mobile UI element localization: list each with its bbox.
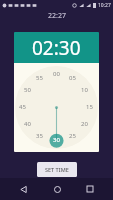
staticText: 05 [69,74,76,82]
staticText: 10:27 [98,2,111,9]
button[interactable]: Recents [79,178,101,200]
staticText: 45 [19,103,26,111]
button[interactable]: Back [12,178,34,200]
staticText: 22:27 [48,11,66,21]
staticText: 50 [24,86,31,94]
staticText: 30 [53,136,60,144]
staticText: 00 [53,70,60,78]
staticText: 55 [36,74,43,82]
button[interactable]: 00 [14,63,99,152]
staticText: 15 [86,103,93,111]
staticText: 10 [81,86,88,94]
staticText: SET TIME [45,166,69,173]
button[interactable]: SET TIME [37,162,77,177]
staticText: 20 [81,120,88,128]
button[interactable]: 02:30 [14,32,99,63]
staticText: 40 [24,120,31,128]
staticText: 02:30 [32,35,81,61]
button[interactable]: Home [46,178,68,200]
staticText: 35 [36,132,43,140]
staticText: 25 [69,132,76,140]
